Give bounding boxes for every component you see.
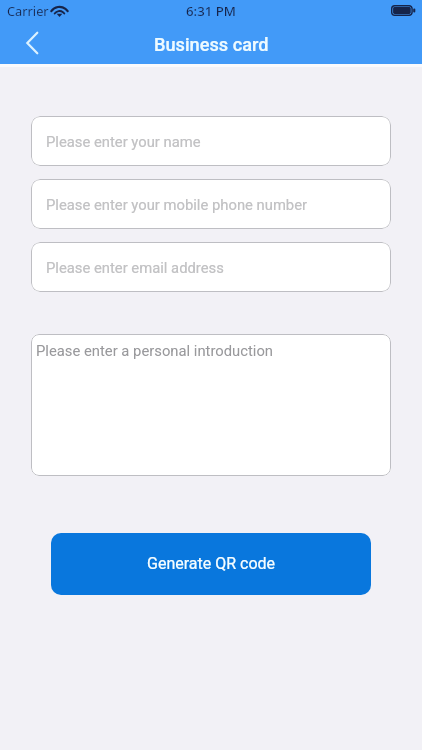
button[interactable]: Please enter your name [31,116,391,166]
button[interactable]: Generate QR code [51,533,371,595]
staticText: Please enter your mobile phone number [46,196,308,213]
staticText: Please enter email address [46,259,224,276]
button[interactable]: Back [12,23,52,63]
staticText: Generate QR code [147,554,276,573]
staticText: Carrier [7,2,49,19]
button[interactable]: Please enter email address [31,242,391,292]
button[interactable]: Please enter your mobile phone number [31,179,391,229]
staticText: Please enter a personal introduction [36,342,274,359]
button[interactable]: Please enter a personal introduction [31,334,391,476]
staticText: Business card [154,34,269,55]
staticText: Please enter your name [46,133,201,150]
other: Battery [391,5,416,16]
staticText: 6:31 PM [186,2,236,20]
